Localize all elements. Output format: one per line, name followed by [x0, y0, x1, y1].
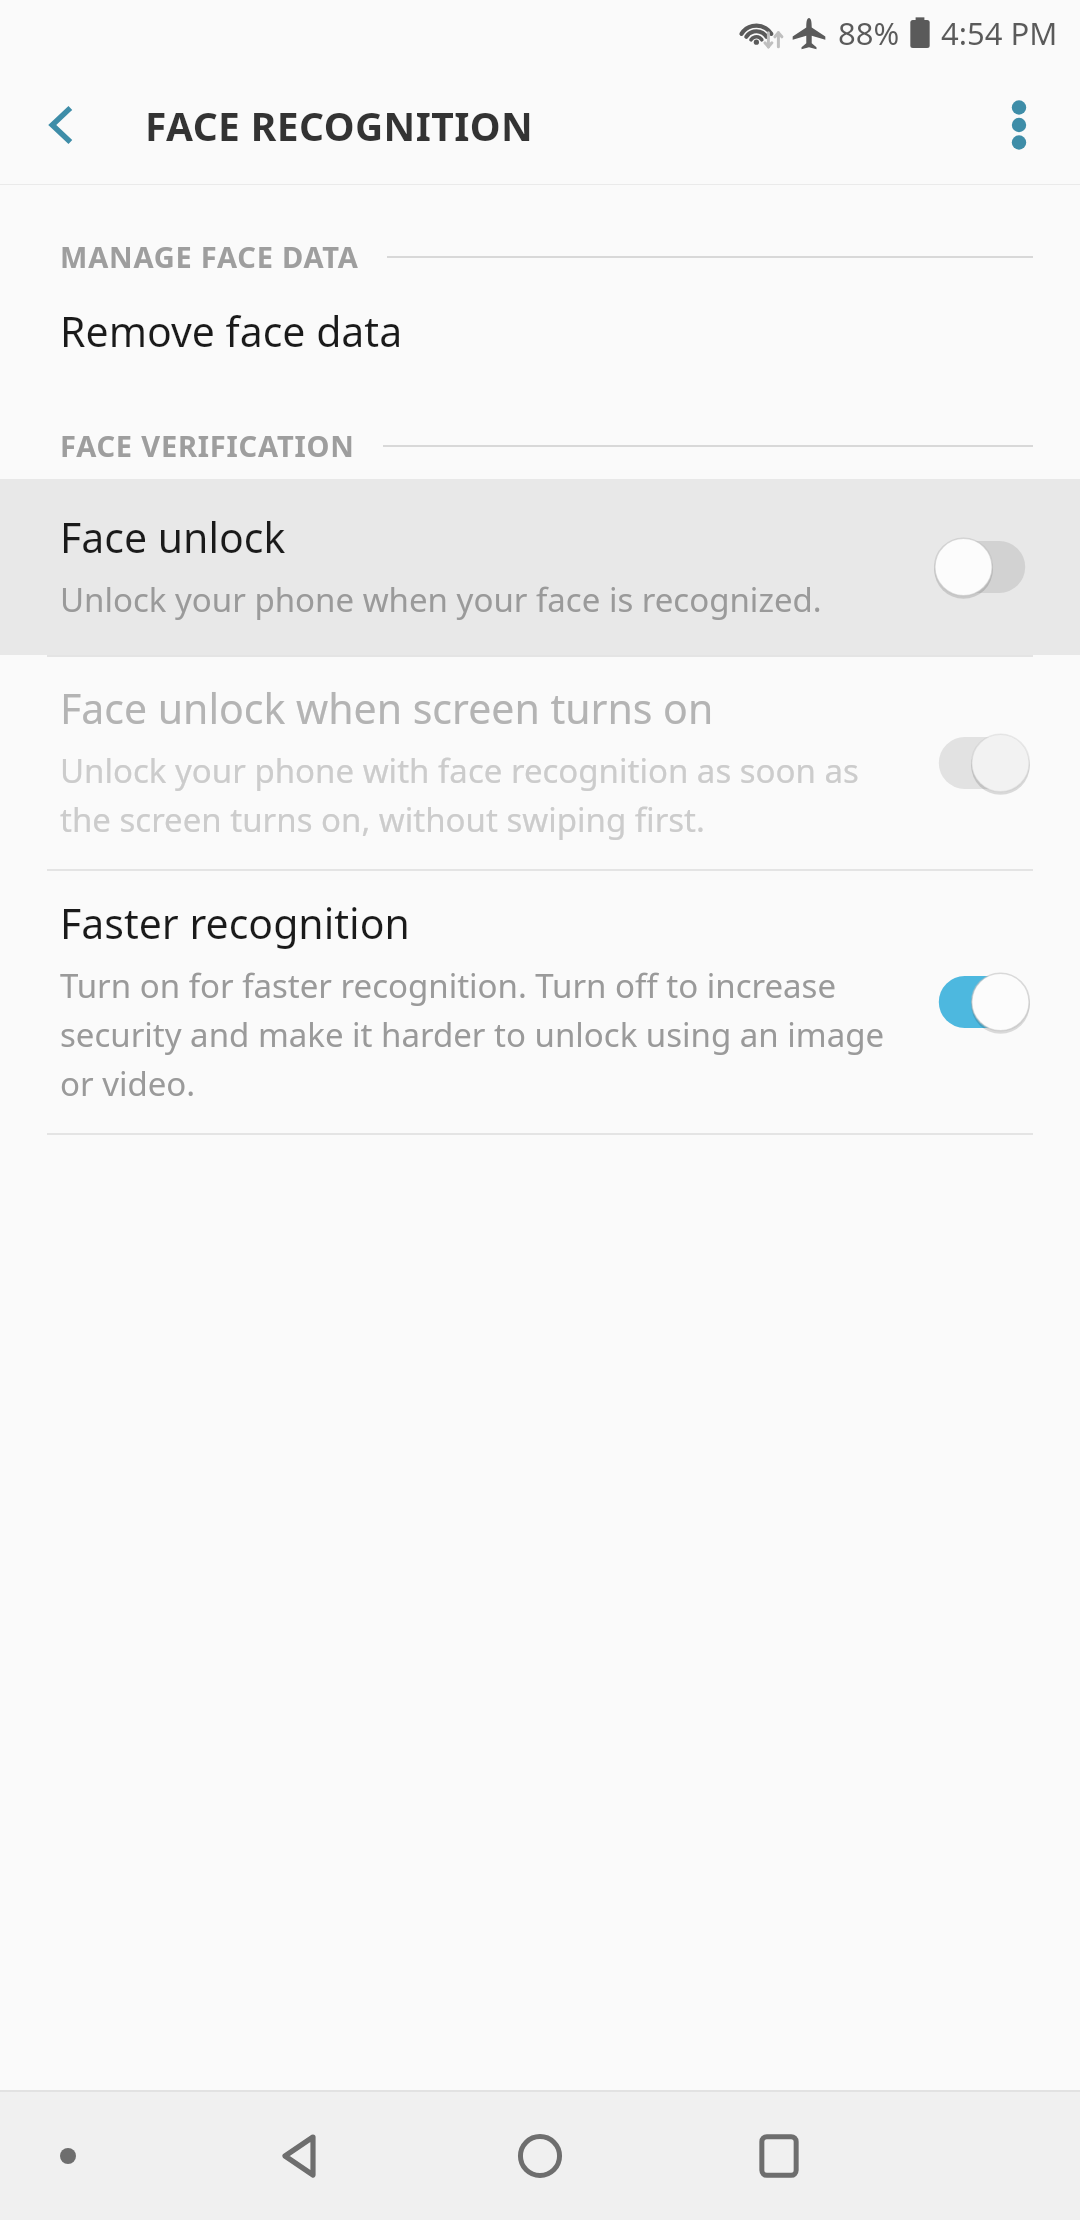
button[interactable]: Toggle — [928, 530, 1036, 604]
staticText: Unlock your phone when your face is reco… — [60, 577, 822, 622]
staticText: Unlock your phone with face recognition … — [60, 748, 859, 793]
button[interactable]: Toggle — [928, 726, 1036, 800]
staticText: security and make it harder to unlock us… — [60, 1012, 885, 1057]
button[interactable]: Remove face data — [0, 276, 1080, 386]
staticText: 88% — [838, 12, 900, 54]
staticText: Face unlock — [60, 509, 286, 565]
staticText: or video. — [60, 1061, 196, 1106]
staticText: Remove face data — [60, 303, 403, 359]
button[interactable]: Toggle — [928, 965, 1036, 1039]
staticText: Faster recognition — [60, 895, 410, 951]
staticText: Turn on for faster recognition. Turn off… — [60, 963, 837, 1008]
button[interactable]: Recents — [720, 2097, 838, 2215]
button[interactable]: Home — [481, 2097, 599, 2215]
button[interactable]: Face unlock when screen turns on — [0, 657, 1080, 869]
button[interactable]: More options — [976, 82, 1062, 168]
staticText: 4:54 PM — [941, 12, 1058, 54]
staticText: Face unlock when screen turns on — [60, 680, 714, 736]
button[interactable]: Faster recognition — [0, 871, 1080, 1133]
button[interactable]: Keyboard indicator — [26, 2114, 110, 2198]
staticText: the screen turns on, without swiping fir… — [60, 797, 705, 842]
button[interactable]: Navigate up — [18, 82, 104, 168]
staticText: FACE VERIFICATION — [60, 426, 355, 465]
staticText: MANAGE FACE DATA — [60, 237, 359, 276]
button[interactable]: Back — [242, 2097, 360, 2215]
button[interactable]: Face unlock — [0, 479, 1080, 655]
staticText: FACE RECOGNITION — [145, 99, 534, 152]
